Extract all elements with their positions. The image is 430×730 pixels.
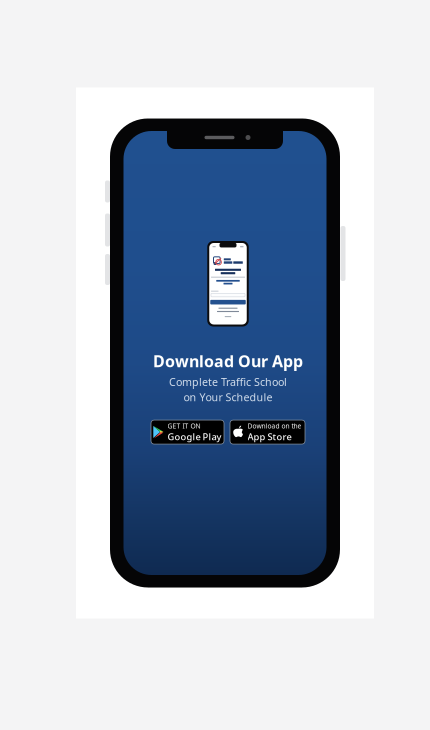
staticText: GET IT ON xyxy=(167,421,200,430)
staticText: Download Our App xyxy=(153,350,303,372)
staticText: Google Play xyxy=(167,430,221,443)
staticText: on Your Schedule xyxy=(183,390,272,404)
button[interactable]: Download on the App Store xyxy=(230,420,305,444)
staticText: Download on the xyxy=(247,421,301,430)
button[interactable]: Get it on Google Play xyxy=(151,420,224,444)
staticText: App Store xyxy=(247,430,291,443)
staticText: Complete Traffic School xyxy=(169,375,287,389)
